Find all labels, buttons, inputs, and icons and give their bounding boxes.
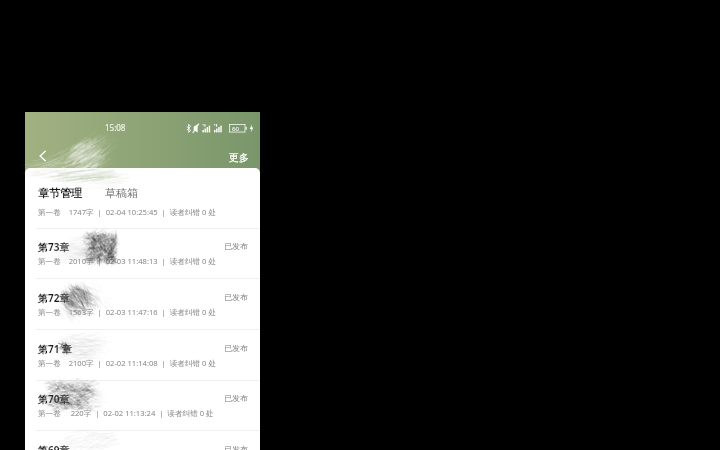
staticText: 60 — [232, 125, 239, 133]
staticText: 第73章 — [38, 240, 70, 254]
staticText: 第一卷 220字 | 02-02 11:13:24 | 读者纠错 0 处 — [38, 408, 214, 418]
button[interactable]: 更多 — [229, 151, 249, 164]
button[interactable]: 第69章 — [25, 431, 260, 450]
button[interactable]: 第70章 — [25, 380, 260, 431]
staticText: 已发布 — [224, 444, 248, 450]
staticText: 第70章 — [38, 392, 70, 406]
staticText: 已发布 — [224, 241, 248, 251]
button[interactable]: 章节管理 — [38, 186, 82, 200]
button[interactable]: 第71 章 — [25, 330, 260, 381]
staticText: 草稿箱 — [105, 186, 138, 200]
staticText: 已发布 — [224, 393, 248, 403]
staticText: 15:08 — [105, 122, 126, 133]
staticText: 第一卷 1747字 | 02-04 10:25:45 | 读者纠错 0 处 — [38, 207, 216, 217]
staticText: 第69章 — [38, 443, 70, 450]
button[interactable]: Back — [30, 143, 56, 169]
staticText: 已发布 — [224, 343, 248, 353]
button[interactable]: 第一卷 1747字 | 02-04 10:25:45 | 读者纠错 0 处 — [25, 194, 260, 228]
staticText: 第71 章 — [38, 342, 73, 356]
button[interactable]: 草稿箱 — [105, 186, 138, 200]
staticText: 第一卷 2010字 | 02-03 11:48:13 | 读者纠错 0 处 — [38, 256, 216, 266]
button[interactable]: 第73章 — [25, 228, 260, 279]
staticText: 已发布 — [224, 292, 248, 302]
staticText: 第一卷 1563字 | 02-03 11:47:16 | 读者纠错 0 处 — [38, 307, 216, 317]
staticText: 更多 — [229, 151, 249, 164]
staticText: 章节管理 — [38, 186, 82, 200]
staticText: 第一卷 2100字 | 02-02 11:14:08 | 读者纠错 0 处 — [38, 358, 216, 368]
button[interactable]: 第72章 — [25, 279, 260, 330]
staticText: 第72章 — [38, 291, 70, 305]
